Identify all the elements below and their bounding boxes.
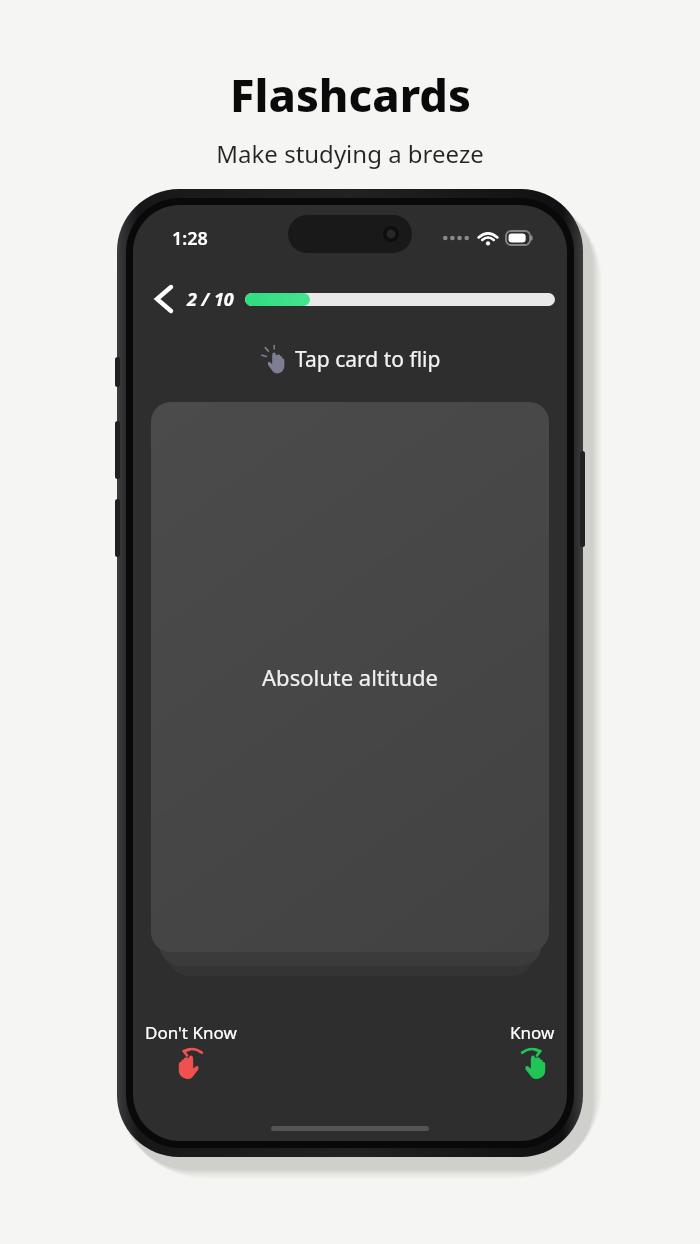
staticText: Make studying a breeze [216,137,484,170]
staticText: Flashcards [230,64,471,125]
staticText: Absolute altitude [262,662,438,692]
staticText: 1:28 [172,226,208,251]
button[interactable]: Know [510,1021,555,1080]
staticText: 2 / 10 [187,287,234,312]
staticText: Don't Know [145,1021,237,1044]
button[interactable]: Don't Know [145,1021,237,1080]
staticText: Know [510,1021,555,1044]
button[interactable]: Absolute altitude [151,402,549,952]
button[interactable]: Back [143,281,185,317]
staticText: Tap card to flip [295,345,441,374]
